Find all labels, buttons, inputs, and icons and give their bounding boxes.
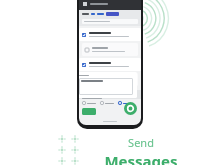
button[interactable] <box>79 28 141 41</box>
button[interactable] <box>82 101 96 105</box>
button[interactable] <box>79 58 141 71</box>
button[interactable]: Menu <box>83 2 108 6</box>
button[interactable]: New message <box>124 102 137 115</box>
button[interactable] <box>79 72 137 98</box>
button[interactable]: Send <box>82 108 96 115</box>
button[interactable]: Filter <box>106 12 119 16</box>
button[interactable] <box>118 101 130 105</box>
button[interactable] <box>100 101 114 105</box>
staticText: Messages <box>104 151 178 165</box>
staticText: Send <box>128 135 154 150</box>
button[interactable] <box>79 90 141 99</box>
button[interactable] <box>82 73 138 86</box>
button[interactable] <box>82 19 138 24</box>
button[interactable] <box>82 43 138 56</box>
